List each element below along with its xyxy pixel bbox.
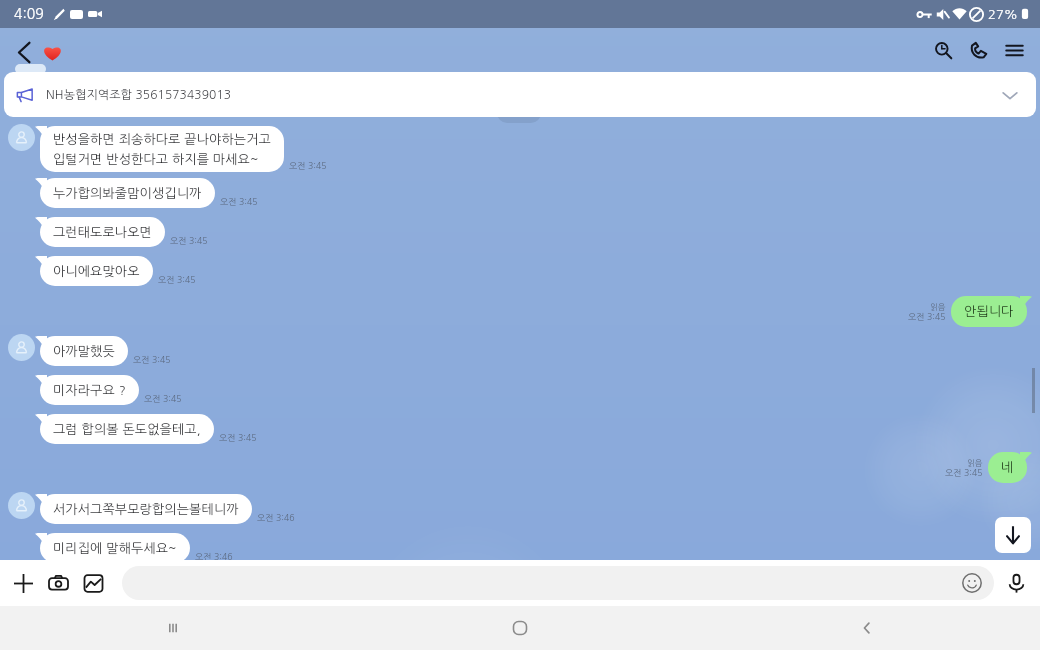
staticText: 오전 3:45 bbox=[219, 433, 257, 442]
button[interactable]: Emoji bbox=[122, 566, 994, 600]
button[interactable]: 아까말했듯 bbox=[40, 336, 128, 366]
staticText: 읽음 bbox=[930, 303, 946, 311]
button[interactable]: Camera bbox=[42, 567, 74, 599]
staticText: 27% bbox=[988, 8, 1018, 21]
staticText: 서가서그쪽부모랑합의는볼테니까 bbox=[53, 503, 239, 516]
button[interactable]: Gallery bbox=[77, 567, 109, 599]
button[interactable]: Scroll to bottom bbox=[995, 517, 1031, 553]
staticText: 오전 3:46 bbox=[257, 513, 295, 522]
staticText: 네 bbox=[1001, 461, 1014, 474]
staticText: 오전 3:45 bbox=[220, 197, 258, 206]
staticText: 누가합의봐줄맘이생깁니까 bbox=[53, 187, 202, 200]
button[interactable]: NH농협지역조합 3561573439013 bbox=[4, 72, 1036, 117]
staticText: 오전 3:45 bbox=[908, 312, 946, 321]
staticText: NH농협지역조합 3561573439013 bbox=[46, 89, 232, 101]
button[interactable]: Back bbox=[5, 33, 43, 71]
staticText: 미리집에 말해두세요~ bbox=[53, 542, 177, 555]
button[interactable]: Chat title bbox=[36, 36, 68, 68]
staticText: 미자라구요 ? bbox=[53, 384, 126, 397]
staticText: 4:09 bbox=[14, 7, 44, 21]
staticText: 오전 3:46 bbox=[195, 552, 233, 561]
staticText: 아니에요맞아오 bbox=[53, 265, 140, 278]
button[interactable]: Home bbox=[346, 606, 693, 650]
staticText: 안됩니다 bbox=[964, 305, 1014, 318]
button[interactable]: Call bbox=[960, 32, 996, 68]
staticText: 오전 3:45 bbox=[144, 394, 182, 403]
button[interactable]: 그런태도로나오면 bbox=[40, 217, 165, 247]
staticText: 오전 3:45 bbox=[158, 275, 196, 284]
button[interactable]: Recent apps bbox=[0, 606, 346, 650]
staticText: 반성을하면 죄송하다로 끝나야하는거고 입털거면 반성한다고 하지를 마세요~ bbox=[53, 133, 271, 166]
staticText: 오전 3:45 bbox=[945, 468, 983, 477]
staticText: 아까말했듯 bbox=[53, 345, 115, 358]
button[interactable]: 반성을하면 죄송하다로 끝나야하는거고 입털거면 반성한다고 하지를 마세요~ bbox=[40, 126, 284, 172]
button[interactable]: Add bbox=[7, 567, 39, 599]
button[interactable]: Voice message bbox=[1000, 567, 1032, 599]
button[interactable]: Back bbox=[693, 606, 1040, 650]
staticText: 오전 3:45 bbox=[170, 236, 208, 245]
staticText: 오전 3:45 bbox=[289, 161, 327, 170]
button[interactable]: 미리집에 말해두세요~ bbox=[40, 533, 190, 563]
button[interactable]: 미자라구요 ? bbox=[40, 375, 139, 405]
button[interactable]: 누가합의봐줄맘이생깁니까 bbox=[40, 178, 215, 208]
button[interactable]: Search bbox=[925, 32, 961, 68]
button[interactable]: 서가서그쪽부모랑합의는볼테니까 bbox=[40, 494, 252, 524]
button[interactable]: Menu bbox=[996, 32, 1032, 68]
button[interactable]: Emoji bbox=[960, 571, 984, 595]
staticText: 읽음 bbox=[967, 459, 983, 467]
button[interactable]: Profile bbox=[8, 124, 35, 151]
button[interactable]: Profile bbox=[8, 334, 35, 361]
button[interactable]: 그럼 합의볼 돈도없을테고, bbox=[40, 414, 214, 444]
staticText: 그런태도로나오면 bbox=[53, 226, 152, 239]
button[interactable]: Expand bbox=[998, 83, 1022, 107]
button[interactable]: 안됩니다 bbox=[951, 296, 1027, 327]
button[interactable]: 아니에요맞아오 bbox=[40, 256, 153, 286]
staticText: 오전 3:45 bbox=[133, 355, 171, 364]
staticText: 그럼 합의볼 돈도없을테고, bbox=[53, 423, 201, 436]
button[interactable]: 네 bbox=[988, 452, 1027, 483]
button[interactable]: Profile bbox=[8, 492, 35, 519]
